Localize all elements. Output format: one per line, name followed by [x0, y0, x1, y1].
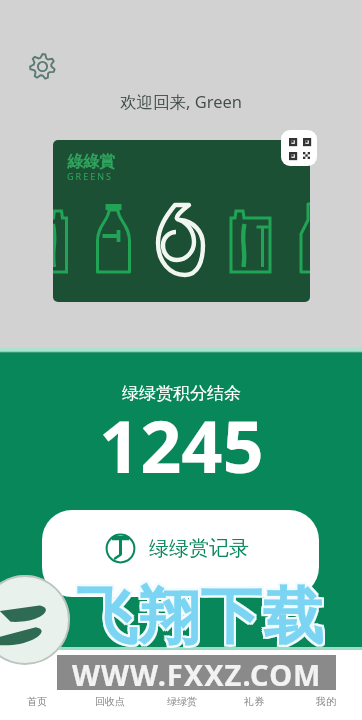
button[interactable]: 我的	[290, 650, 362, 720]
staticText: 飞翔下载	[74, 578, 322, 655]
staticText: 飞翔下载	[78, 578, 326, 655]
button[interactable]: 礼券	[218, 650, 290, 720]
staticText: 欢迎回来, Green	[120, 90, 243, 113]
staticText: 绿绿赏积分结余	[122, 383, 241, 404]
staticText: 1245	[99, 396, 264, 494]
staticText: 回收点	[95, 695, 125, 708]
staticText: 飞翔下载	[74, 576, 322, 653]
staticText: 綠綠賞	[67, 152, 115, 172]
staticText: 飞翔下载	[76, 576, 324, 653]
button[interactable]: 回收点	[73, 650, 146, 720]
staticText: 飞翔下载	[78, 576, 326, 653]
button[interactable]: 首页	[0, 650, 73, 720]
button[interactable]: 绿绿赏	[146, 650, 218, 720]
staticText: 飞翔下载	[76, 578, 324, 655]
button[interactable]: Settings	[25, 49, 59, 83]
button[interactable]: QR code	[281, 130, 317, 166]
button[interactable]: 綠綠賞	[53, 140, 310, 302]
staticText: WWW.FXXZ.COM	[72, 655, 322, 690]
staticText: 绿绿赏	[167, 695, 197, 708]
staticText: 我的	[316, 695, 336, 708]
staticText: 飞翔下载	[76, 580, 324, 657]
staticText: 绿绿赏记录	[149, 536, 249, 561]
staticText: 飞翔下载	[74, 580, 322, 657]
staticText: 飞翔下载	[76, 578, 324, 655]
staticText: GREENS	[67, 170, 113, 182]
staticText: 礼券	[244, 695, 264, 708]
button[interactable]: 绿绿赏记录	[42, 510, 319, 597]
staticText: 飞翔下载	[78, 580, 326, 657]
staticText: 首页	[27, 695, 47, 708]
